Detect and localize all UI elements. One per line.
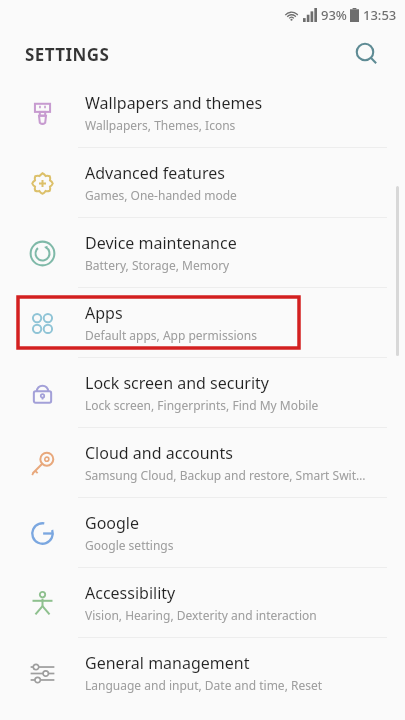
- staticText: Cloud and accounts: [85, 442, 233, 464]
- button[interactable]: Cloud and accounts: [0, 428, 405, 498]
- staticText: General management: [85, 652, 250, 674]
- staticText: Google settings: [85, 537, 174, 553]
- button[interactable]: Advanced features: [0, 148, 405, 218]
- staticText: Games, One-handed mode: [85, 187, 237, 203]
- button[interactable]: Search: [347, 34, 387, 74]
- staticText: Default apps, App permissions: [85, 327, 257, 343]
- staticText: SETTINGS: [25, 43, 110, 66]
- staticText: Vision, Hearing, Dexterity and interacti…: [85, 607, 317, 623]
- button[interactable]: Wallpapers and themes: [0, 78, 405, 148]
- button[interactable]: Accessibility: [0, 568, 405, 638]
- button[interactable]: General management: [0, 638, 405, 707]
- staticText: Language and input, Date and time, Reset: [85, 677, 323, 693]
- staticText: Wallpapers and themes: [85, 92, 263, 114]
- staticText: Wallpapers, Themes, Icons: [85, 117, 236, 133]
- button[interactable]: Apps: [0, 288, 405, 358]
- staticText: Advanced features: [85, 162, 225, 184]
- staticText: Lock screen, Fingerprints, Find My Mobil…: [85, 397, 319, 413]
- button[interactable]: Lock screen and security: [0, 358, 405, 428]
- staticText: Device maintenance: [85, 232, 237, 254]
- button[interactable]: Device maintenance: [0, 218, 405, 288]
- staticText: Samsung Cloud, Backup and restore, Smart…: [85, 467, 366, 483]
- staticText: Google: [85, 512, 140, 534]
- button[interactable]: Google: [0, 498, 405, 568]
- staticText: Apps: [85, 302, 123, 324]
- staticText: Accessibility: [85, 582, 176, 604]
- staticText: 93%: [321, 6, 347, 24]
- staticText: Battery, Storage, Memory: [85, 257, 230, 273]
- staticText: 13:53: [363, 6, 397, 24]
- staticText: Lock screen and security: [85, 372, 269, 394]
